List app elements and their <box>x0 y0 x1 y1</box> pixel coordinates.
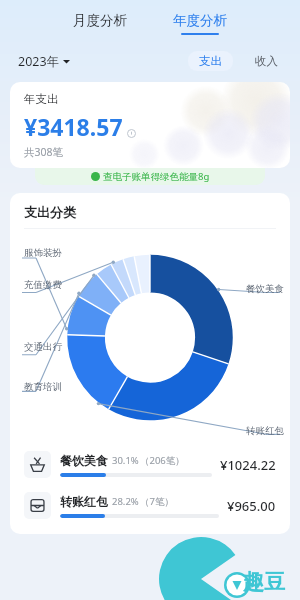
staticText: 年支出 <box>24 92 59 106</box>
button[interactable]: 支出 <box>188 51 233 71</box>
staticText: 教育培训 <box>24 381 62 393</box>
staticText: 转账红包 <box>60 494 108 509</box>
staticText: 共308笔 <box>24 145 64 159</box>
staticText: （7笔） <box>140 495 174 508</box>
staticText: ¥3418.57 <box>24 111 123 142</box>
staticText: 转账红包 <box>246 425 284 437</box>
staticText: 支出 <box>199 54 222 68</box>
button[interactable]: 收入 <box>249 51 284 71</box>
button[interactable]: 查电子账单得绿色能量8g <box>35 168 265 185</box>
staticText: 餐饮美食 <box>246 283 284 295</box>
staticText: 服饰装扮 <box>24 247 62 259</box>
staticText: 查电子账单得绿色能量8g <box>103 170 210 183</box>
button[interactable]: 月度分析 <box>67 10 133 37</box>
staticText: （206笔） <box>140 454 185 467</box>
staticText: 餐饮美食 <box>60 453 108 468</box>
staticText: 28.2% <box>112 495 139 508</box>
staticText: ¥1024.22 <box>220 456 276 474</box>
staticText: 2023年 <box>18 53 60 70</box>
staticText: 交通出行 <box>24 341 62 353</box>
button[interactable]: 2023年 <box>16 51 72 72</box>
staticText: 支出分类 <box>24 204 76 220</box>
staticText: 月度分析 <box>73 12 127 29</box>
staticText: 趣豆 <box>243 569 285 595</box>
staticText: 充值缴费 <box>24 279 62 291</box>
staticText: 30.1% <box>112 454 139 467</box>
staticText: 年度分析 <box>173 12 227 29</box>
staticText: ¥965.00 <box>227 497 276 515</box>
button[interactable]: 年支出 <box>10 82 290 168</box>
button[interactable]: 转账红包 <box>10 485 290 526</box>
button[interactable]: 餐饮美食 <box>10 444 290 485</box>
button[interactable]: 年度分析 <box>167 10 233 37</box>
staticText: 收入 <box>255 54 278 68</box>
